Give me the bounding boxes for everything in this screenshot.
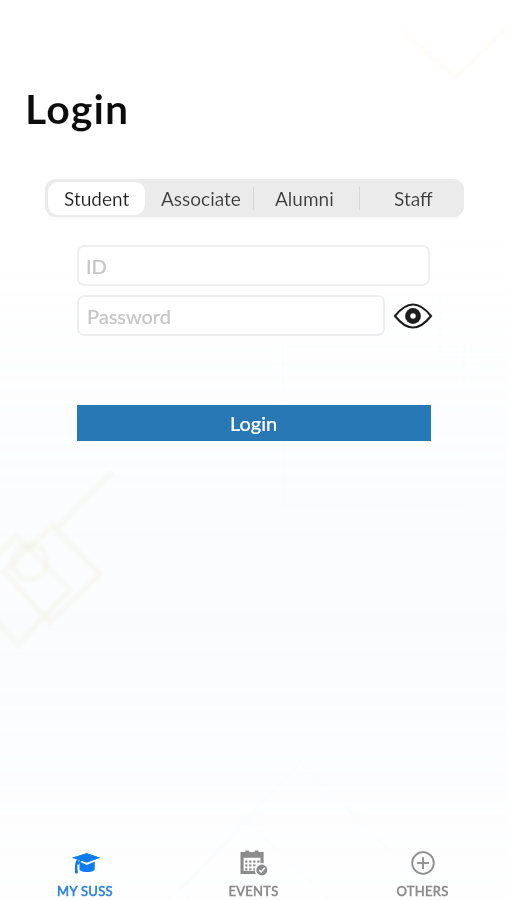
button[interactable]: EVENTS (169, 830, 338, 900)
staticText: Student (64, 187, 130, 210)
staticText: Associate (161, 187, 241, 210)
staticText: Alumni (275, 187, 334, 210)
button[interactable]: Alumni (268, 179, 340, 217)
button[interactable]: Password (77, 295, 385, 336)
button[interactable]: MY SUSS (0, 830, 169, 900)
staticText: MY SUSS (57, 883, 113, 899)
button[interactable]: Show password (385, 295, 441, 336)
button[interactable]: Staff (388, 179, 438, 217)
button[interactable]: ID (77, 245, 430, 286)
button[interactable]: OTHERS (338, 830, 507, 900)
button[interactable]: Associate (158, 179, 244, 217)
staticText: ID (86, 254, 107, 278)
staticText: Login (230, 411, 278, 435)
button[interactable]: Login (77, 405, 431, 441)
staticText: OTHERS (396, 883, 449, 899)
staticText: Staff (394, 187, 433, 210)
staticText: Login (25, 84, 130, 133)
button[interactable]: Student (48, 182, 145, 215)
staticText: Password (87, 304, 171, 328)
staticText: EVENTS (228, 883, 279, 899)
